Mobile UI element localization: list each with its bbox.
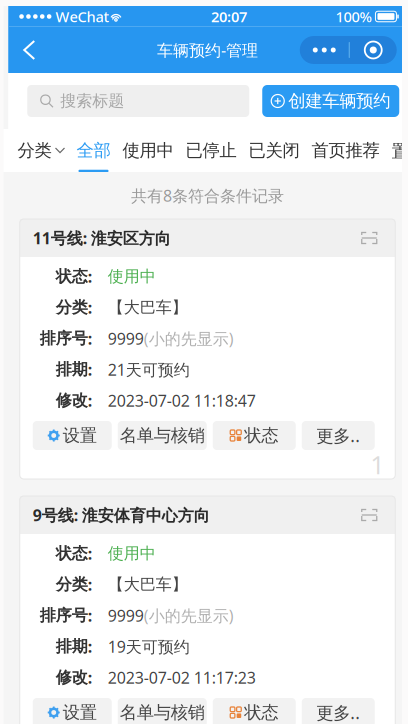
staticText: 2023-07-02 11:18:47 [108, 390, 256, 411]
staticText: 共有8条符合条件记录 [131, 185, 284, 206]
button[interactable]: 搜索标题 [27, 85, 249, 117]
staticText: : [88, 297, 92, 318]
button[interactable]: 使用中 [116, 129, 179, 172]
staticText: 置] [391, 139, 408, 162]
staticText: : [88, 359, 92, 380]
button[interactable]: Scan [356, 225, 382, 251]
staticText: 设置 [63, 425, 97, 446]
staticText: 9号线: 淮安体育中心方向 [33, 504, 210, 526]
staticText: 创建车辆预约 [288, 90, 390, 112]
button[interactable]: 首页推荐 [305, 129, 385, 172]
staticText: 状态 [244, 425, 278, 446]
button[interactable]: 名单与核销 [118, 698, 207, 724]
staticText: 1 [370, 448, 384, 481]
button[interactable]: More [300, 36, 349, 64]
staticText: 已停止 [185, 140, 236, 161]
button[interactable]: 置] [385, 129, 408, 172]
staticText: 20:07 [211, 7, 247, 26]
staticText: 修改 [56, 391, 88, 410]
staticText: : [88, 543, 92, 564]
button[interactable]: 已关闭 [242, 129, 305, 172]
staticText: 首页推荐 [311, 140, 379, 161]
button[interactable]: 创建车辆预约 [262, 85, 399, 117]
staticText: 分类 [56, 575, 88, 594]
staticText: 11号线: 淮安区方向 [33, 227, 171, 249]
staticText: 排序号 [40, 606, 88, 625]
staticText: 排期 [56, 637, 88, 656]
staticText: 设置 [63, 702, 97, 723]
staticText: 9999 [108, 328, 144, 349]
staticText: : [88, 574, 92, 595]
staticText: 状态 [56, 544, 88, 563]
staticText: : [88, 266, 92, 287]
staticText: 已关闭 [248, 140, 299, 161]
staticText: 使用中 [108, 544, 156, 563]
button[interactable]: 全部 [70, 129, 116, 172]
staticText: 100% [335, 7, 371, 26]
staticText: : [88, 636, 92, 657]
button[interactable]: Scan [356, 502, 382, 528]
staticText: : [88, 328, 92, 349]
staticText: : [88, 390, 92, 411]
staticText: WeChat [51, 7, 109, 26]
staticText: 【大巴车】 [108, 298, 188, 317]
button[interactable]: 更多.. [302, 421, 375, 450]
staticText: 修改 [56, 668, 88, 687]
staticText: 分类 [17, 140, 51, 161]
button[interactable]: 状态 [213, 421, 296, 450]
staticText: : [88, 667, 92, 688]
staticText: 分类 [56, 298, 88, 317]
button[interactable]: 状态 [213, 698, 296, 724]
button[interactable]: 设置 [33, 421, 112, 450]
staticText: 9999 [108, 605, 144, 626]
button[interactable]: 分类 [17, 129, 70, 172]
staticText: 车辆预约-管理 [157, 39, 258, 61]
staticText: (小的先显示) [144, 328, 234, 349]
button[interactable]: 已停止 [179, 129, 242, 172]
button[interactable]: 名单与核销 [118, 421, 207, 450]
staticText: 更多.. [316, 701, 360, 724]
staticText: (小的先显示) [144, 605, 234, 626]
staticText: 名单与核销 [120, 702, 205, 723]
staticText: 使用中 [122, 140, 173, 161]
staticText: 更多.. [316, 424, 360, 447]
button[interactable]: 设置 [33, 698, 112, 724]
staticText: 19天可预约 [108, 636, 190, 657]
staticText: 21天可预约 [108, 359, 190, 380]
staticText: 2023-07-02 11:17:23 [108, 667, 256, 688]
staticText: 全部 [76, 140, 110, 161]
staticText: 状态 [56, 267, 88, 286]
button[interactable]: Close [350, 36, 397, 64]
staticText: 搜索标题 [60, 91, 124, 111]
button[interactable]: 更多.. [302, 698, 375, 724]
staticText: 排期 [56, 360, 88, 379]
button[interactable]: Back [8, 28, 50, 72]
staticText: 状态 [244, 702, 278, 723]
staticText: 使用中 [108, 267, 156, 286]
staticText: 【大巴车】 [108, 575, 188, 594]
staticText: 排序号 [40, 329, 88, 348]
staticText: : [88, 605, 92, 626]
staticText: 名单与核销 [120, 425, 205, 446]
